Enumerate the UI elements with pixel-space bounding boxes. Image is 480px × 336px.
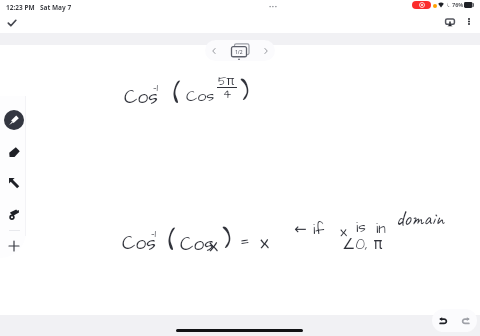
staticText: Cos — [122, 230, 156, 256]
staticText: ( — [173, 77, 181, 113]
button[interactable]: Cast screen — [440, 13, 460, 33]
staticText: is — [356, 217, 366, 238]
button[interactable]: Undo — [432, 309, 454, 332]
staticText: Cos — [180, 231, 214, 257]
staticText: x — [209, 232, 218, 258]
button[interactable]: Previous page — [205, 40, 223, 61]
button[interactable]: Redo — [454, 309, 477, 332]
staticText: 5π — [218, 72, 235, 90]
button[interactable]: Pen — [4, 110, 24, 130]
staticText: 1/2 — [235, 49, 243, 56]
staticText: = — [240, 228, 250, 254]
button[interactable]: More options — [460, 12, 478, 30]
button[interactable]: Done — [2, 13, 21, 32]
staticText: x — [260, 229, 269, 255]
button[interactable]: Lasso — [4, 204, 24, 224]
staticText: ( — [168, 224, 176, 260]
staticText: -1 — [151, 226, 156, 241]
button[interactable]: Pages 1 of 2 — [223, 40, 257, 61]
button[interactable]: Select — [4, 173, 24, 193]
staticText: in — [376, 218, 386, 239]
button[interactable]: Eraser — [4, 142, 24, 162]
staticText: ) — [240, 74, 250, 110]
staticText: 76% — [452, 1, 464, 8]
button[interactable]: Add tool — [4, 236, 24, 256]
staticText: Cos — [124, 84, 158, 110]
staticText: ••• — [269, 3, 278, 11]
staticText: Sat May 7 — [40, 3, 72, 12]
staticText: -1 — [153, 80, 158, 95]
staticText: ← — [294, 220, 307, 237]
staticText: domain — [396, 206, 444, 231]
button[interactable]: Next page — [257, 40, 275, 61]
staticText: ) — [222, 222, 232, 258]
staticText: if — [313, 219, 325, 240]
staticText: 12:23 PM — [6, 3, 35, 12]
staticText: ∠0, π — [342, 234, 383, 255]
staticText: Cos — [186, 85, 215, 107]
staticText: 4 — [223, 86, 232, 103]
staticText: x — [340, 221, 348, 242]
